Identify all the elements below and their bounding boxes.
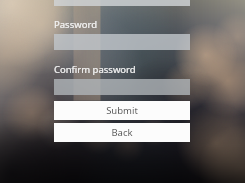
button[interactable] [54,0,190,6]
button[interactable]: Submit [54,101,190,120]
staticText: Back [111,126,133,139]
staticText: Confirm password [54,63,136,76]
staticText: Password [54,18,97,31]
staticText: Submit [106,104,138,117]
button[interactable] [54,79,190,95]
button[interactable] [54,34,190,50]
button[interactable]: Back [54,123,190,142]
